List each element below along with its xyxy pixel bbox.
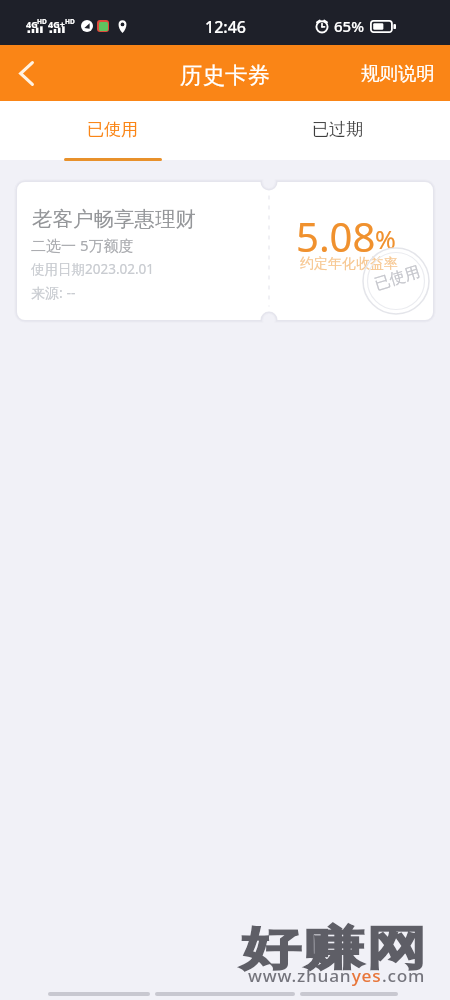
staticText: 已过期 [312,119,363,140]
staticText: 12:46 [205,16,246,38]
button[interactable]: 已使用 [0,101,225,160]
staticText: 5.08 [296,209,376,263]
button[interactable]: Back [0,47,52,99]
staticText: 65% [334,16,364,36]
staticText: 使用日期2023.02.01 [31,260,155,278]
staticText: 二选一 5万额度 [31,235,134,255]
staticText: 好赚网 [239,920,428,978]
button[interactable]: 规则说明 [343,48,450,99]
button[interactable]: 已过期 [225,101,450,160]
staticText: .com [382,965,426,987]
staticText: HD [37,17,47,26]
staticText: 4G [26,18,38,30]
staticText: yes [352,965,382,987]
staticText: HD [65,17,75,26]
staticText: 历史卡券 [180,61,270,89]
staticText: 已使用 [372,262,423,294]
staticText: 4G+ [48,18,65,30]
staticText: 老客户畅享惠理财 [32,206,196,232]
staticText: www.zhuan [248,965,352,987]
button[interactable]: 老客户畅享惠理财 [17,182,433,320]
staticText: 来源: -- [31,283,76,302]
staticText: 约定年化收益率 [300,255,398,273]
staticText: 规则说明 [361,62,435,85]
staticText: 已使用 [87,119,138,140]
staticText: % [375,222,396,256]
